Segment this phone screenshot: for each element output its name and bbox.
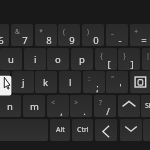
staticText: 7	[22, 34, 28, 46]
button[interactable]: l	[59, 71, 81, 93]
staticText: >	[74, 98, 78, 107]
button[interactable]: ,	[47, 95, 69, 117]
staticText: )	[87, 27, 89, 36]
staticText: l	[69, 76, 72, 89]
staticText: ]	[130, 58, 134, 70]
button[interactable]: \	[142, 48, 150, 70]
button[interactable]: /	[94, 95, 116, 117]
staticText: 0	[93, 34, 99, 46]
button[interactable]: i	[24, 48, 46, 70]
button[interactable]: Up	[118, 95, 140, 117]
staticText: :	[88, 74, 90, 83]
staticText: 9	[69, 34, 75, 46]
staticText: ;	[96, 81, 99, 93]
staticText: Shift	[145, 101, 150, 111]
staticText: Ctrl	[77, 125, 89, 135]
staticText: u	[8, 53, 14, 66]
staticText: _	[111, 27, 114, 36]
staticText: |	[146, 51, 150, 60]
staticText: o	[55, 53, 61, 66]
staticText: 8	[46, 34, 52, 46]
staticText: '	[119, 81, 122, 93]
button[interactable]: '	[106, 71, 128, 93]
button[interactable]: Down	[120, 119, 142, 141]
staticText: "	[111, 74, 114, 83]
staticText: =	[141, 34, 147, 46]
button[interactable]: k	[35, 71, 57, 93]
staticText: <	[51, 98, 55, 107]
button[interactable]: 7	[11, 24, 33, 46]
button[interactable]: ]	[118, 48, 140, 70]
staticText: }	[123, 51, 126, 60]
staticText: j	[22, 76, 25, 89]
button[interactable]: o	[47, 48, 69, 70]
staticText: p	[79, 53, 85, 66]
button[interactable]: .	[70, 95, 92, 117]
staticText: .	[83, 105, 86, 117]
button[interactable]: Left	[95, 119, 117, 141]
button[interactable]: 0	[82, 24, 104, 46]
staticText: n	[7, 100, 13, 113]
button[interactable]: Alt	[50, 119, 70, 141]
staticText: +	[134, 27, 138, 36]
button[interactable]: p	[71, 48, 93, 70]
staticText: Alt	[56, 125, 65, 135]
staticText: i	[34, 53, 37, 66]
staticText: 6	[0, 34, 4, 46]
button[interactable]: Enter	[130, 71, 150, 93]
staticText: ?	[99, 98, 102, 107]
button[interactable]: -	[106, 24, 128, 46]
button[interactable]: =	[130, 24, 150, 46]
staticText: {	[100, 51, 103, 60]
button[interactable]: 6	[0, 24, 9, 46]
button[interactable]: ;	[83, 71, 105, 93]
staticText: *	[39, 27, 43, 36]
button[interactable]: h	[0, 71, 10, 93]
button[interactable]: j	[12, 71, 34, 93]
staticText: [	[107, 58, 111, 70]
staticText: k	[43, 76, 49, 89]
button[interactable]: n	[0, 95, 21, 117]
button[interactable]: [	[95, 48, 117, 70]
staticText: (	[63, 27, 65, 36]
staticText: m	[30, 100, 39, 113]
button[interactable]: Shift	[141, 95, 150, 117]
staticText: /	[106, 105, 110, 117]
staticText: -	[118, 34, 122, 46]
button[interactable]: 9	[58, 24, 80, 46]
button[interactable]: 8	[35, 24, 57, 46]
button[interactable]: u	[0, 48, 22, 70]
staticText: &	[15, 27, 20, 36]
button[interactable]: Ctrl	[72, 119, 93, 141]
staticText: ,	[60, 105, 63, 117]
button[interactable]: m	[23, 95, 45, 117]
